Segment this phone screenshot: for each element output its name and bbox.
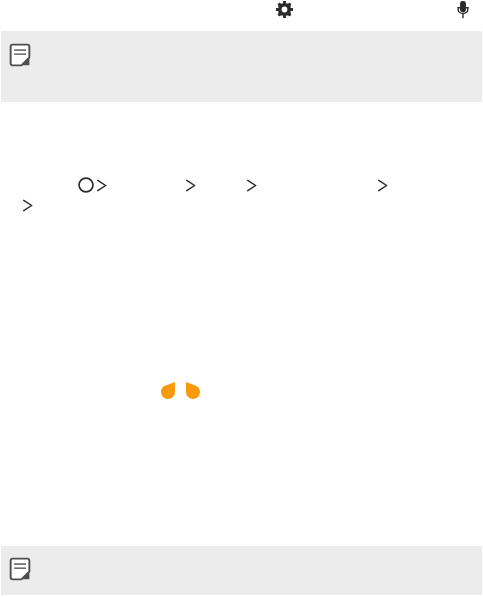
button[interactable]: Settings [276, 1, 293, 18]
button[interactable]: Related article card [1, 546, 482, 595]
button[interactable]: Voice search [455, 0, 471, 19]
button[interactable]: Article card [1, 31, 482, 102]
